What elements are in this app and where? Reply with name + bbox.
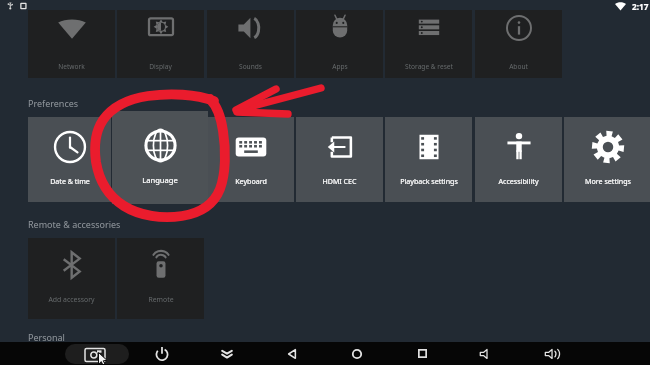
button[interactable]: More settings [564,117,650,202]
button[interactable]: Date & time [28,117,111,202]
button[interactable]: Playback settings [385,117,472,202]
button[interactable]: Network [28,10,115,78]
staticText: Apps [332,62,348,71]
staticText: Remote & accessories [28,218,121,230]
staticText: Keyboard [235,176,267,186]
staticText: Storage & reset [405,62,453,71]
button[interactable]: Power [146,342,178,365]
staticText: More settings [585,176,631,186]
button[interactable]: Back [276,342,308,365]
staticText: About [509,62,528,71]
staticText: Remote [148,295,174,304]
button[interactable]: Language [112,111,208,204]
button[interactable]: Accessibility [475,117,562,202]
button[interactable]: Sounds [207,10,294,78]
button[interactable]: Keyboard [207,117,294,202]
button[interactable]: About [475,10,562,78]
button[interactable]: Remote [117,238,204,319]
button[interactable]: Volume down [471,342,503,365]
staticText: Playback settings [400,176,458,186]
staticText: Preferences [28,97,79,109]
staticText: Language [142,175,178,185]
staticText: Add accessory [48,295,95,304]
staticText: Network [58,62,85,71]
staticText: HDMI CEC [322,176,357,186]
button[interactable]: Screenshot [65,344,129,364]
button[interactable]: Storage & reset [385,10,472,78]
button[interactable]: Add accessory [28,238,115,319]
button[interactable]: Volume up [537,342,569,365]
button[interactable]: Display [117,10,204,78]
staticText: Accessibility [498,176,539,186]
button[interactable]: HDMI CEC [296,117,383,202]
button[interactable]: Apps [296,10,383,78]
button[interactable]: Recents [406,342,438,365]
button[interactable]: Home [341,342,373,365]
staticText: Personal [28,331,65,343]
staticText: Display [149,62,172,71]
staticText: Sounds [239,62,262,71]
staticText: 2:17 [632,1,649,12]
button[interactable]: Menu [211,342,243,365]
staticText: Date & time [50,176,90,186]
